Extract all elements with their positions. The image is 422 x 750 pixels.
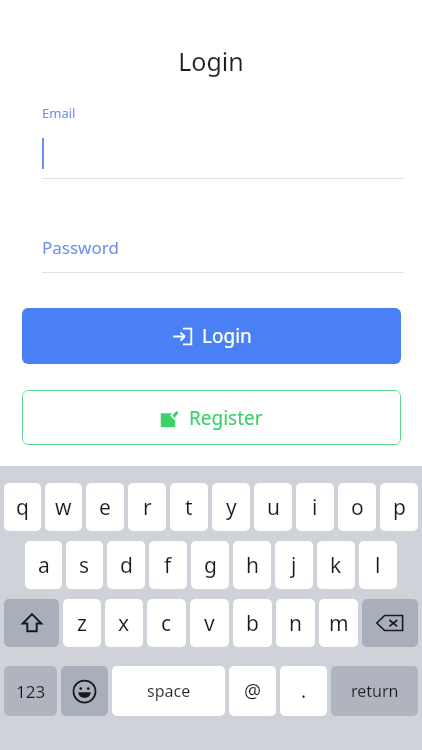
button[interactable]: n [276,599,315,647]
button[interactable]: l [359,541,397,589]
staticText: y [226,493,237,522]
staticText: o [351,493,364,522]
staticText: p [393,493,406,522]
staticText: d [120,551,133,580]
button[interactable]: p [380,483,418,531]
button[interactable]: . [280,666,327,716]
button[interactable]: u [254,483,292,531]
button[interactable]: g [191,541,229,589]
staticText: q [16,493,29,522]
button[interactable]: @ [229,666,276,716]
button[interactable]: e [86,483,124,531]
button[interactable]: r [128,483,166,531]
other: Register [160,409,179,428]
button[interactable]: a [25,541,62,589]
button[interactable]: o [338,483,376,531]
button[interactable]: f [149,541,187,589]
staticText: z [77,609,87,638]
button[interactable]: Login [22,308,401,364]
button[interactable]: return [331,666,418,716]
staticText: Email [42,104,76,122]
staticText: s [79,551,90,580]
other: Login [172,326,193,347]
staticText: f [164,551,172,580]
staticText: b [246,609,259,638]
button[interactable]: 123 [4,666,57,716]
staticText: n [289,609,302,638]
button[interactable]: v [190,599,229,647]
staticText: return [351,680,399,702]
staticText: j [291,551,297,580]
staticText: @ [244,678,262,704]
button[interactable]: j [275,541,313,589]
button[interactable]: w [45,483,82,531]
staticText: l [375,551,381,580]
staticText: r [143,493,152,522]
staticText: t [185,493,193,522]
button[interactable]: k [317,541,355,589]
staticText: w [55,493,72,522]
button[interactable]: s [66,541,103,589]
staticText: i [312,493,318,522]
staticText: Login [178,44,244,78]
button[interactable]: space [112,666,225,716]
staticText: h [246,551,259,580]
button[interactable]: d [107,541,145,589]
staticText: 123 [16,680,46,703]
button[interactable]: b [233,599,272,647]
button[interactable]: z [63,599,101,647]
staticText: k [330,551,342,580]
staticText: m [329,609,349,638]
button[interactable]: c [147,599,186,647]
staticText: v [204,609,215,638]
staticText: Password [42,236,119,259]
staticText: a [38,551,50,580]
staticText: x [118,609,130,638]
staticText: Register [189,405,263,431]
staticText: space [147,680,191,702]
button[interactable]: Register [22,390,401,445]
staticText: . [301,678,307,704]
button[interactable]: q [4,483,41,531]
button[interactable]: Emoji [61,666,108,716]
button[interactable]: x [105,599,143,647]
staticText: e [99,493,111,522]
button[interactable]: m [319,599,358,647]
button[interactable]: Shift [4,599,59,647]
staticText: Login [202,323,252,349]
staticText: c [161,609,172,638]
button[interactable]: h [233,541,271,589]
button[interactable]: y [212,483,250,531]
button[interactable]: t [170,483,208,531]
button[interactable]: i [296,483,334,531]
button[interactable]: Backspace [362,599,418,647]
staticText: g [204,551,217,580]
staticText: u [267,493,280,522]
